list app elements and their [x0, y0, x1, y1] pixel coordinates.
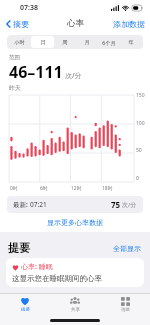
staticText: 月: [84, 39, 90, 46]
staticText: 0: [136, 175, 139, 182]
staticText: 显示更多心率数据: [47, 218, 103, 227]
staticText: 50: [136, 147, 142, 154]
staticText: 0时: [10, 185, 18, 192]
button[interactable]: 摘要: [4, 16, 31, 32]
staticText: 次/分: [65, 71, 82, 81]
staticText: 心率: [67, 18, 84, 29]
button[interactable]: 周: [54, 36, 76, 48]
staticText: 日: [40, 39, 46, 46]
staticText: 摘要: [13, 19, 29, 29]
staticText: 范围: [9, 54, 20, 61]
staticText: 150: [136, 92, 145, 99]
staticText: 75: [111, 199, 121, 210]
button[interactable]: 日: [31, 36, 54, 48]
staticText: 周: [62, 39, 68, 46]
staticText: 100: [136, 120, 145, 127]
staticText: 年: [128, 39, 134, 46]
staticText: 6个月: [102, 39, 116, 46]
staticText: 浏览: [121, 307, 130, 313]
staticText: 07:38: [20, 3, 38, 13]
staticText: 次/分: [122, 201, 137, 209]
button[interactable]: 浏览: [100, 294, 150, 315]
staticText: 昨天: [9, 84, 21, 92]
button[interactable]: 月: [76, 36, 98, 48]
staticText: 07:21: [30, 200, 47, 209]
button[interactable]: 摘要: [0, 294, 50, 315]
staticText: 这显示您在睡眠期间的心率: [12, 274, 102, 283]
staticText: 46–111: [9, 61, 63, 83]
staticText: 18时: [102, 185, 113, 192]
staticText: 提要: [8, 241, 30, 255]
button[interactable]: 年: [120, 36, 142, 48]
staticText: 6时: [40, 185, 48, 192]
staticText: 摘要: [21, 307, 30, 313]
button[interactable]: 显示更多心率数据: [0, 213, 150, 232]
button[interactable]: 全部显示: [111, 242, 143, 255]
button[interactable]: 小时: [8, 36, 31, 48]
button[interactable]: 最新:: [7, 196, 143, 213]
button[interactable]: 心率: 睡眠: [6, 258, 144, 287]
staticText: 心率: 睡眠: [21, 262, 53, 272]
button[interactable]: 共享: [50, 294, 100, 315]
button[interactable]: 添加数据: [108, 16, 150, 32]
button[interactable]: 6个月: [98, 36, 120, 48]
staticText: 小时: [14, 39, 25, 46]
staticText: 12时: [71, 185, 82, 192]
staticText: 共享: [71, 307, 80, 313]
staticText: 最新:: [13, 200, 30, 209]
